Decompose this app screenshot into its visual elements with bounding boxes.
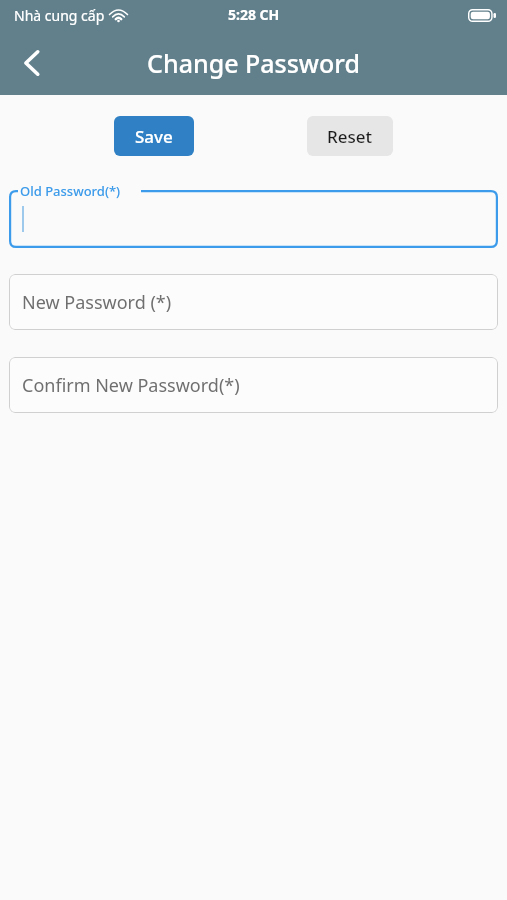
button[interactable]: New Password (*)	[9, 274, 498, 330]
staticText: Old Password(*)	[20, 182, 121, 200]
staticText: Change Password	[147, 46, 360, 80]
button[interactable]: Old Password(*)	[9, 190, 498, 248]
staticText: New Password (*)	[22, 290, 172, 315]
button[interactable]: Reset	[307, 116, 393, 156]
staticText: Reset	[327, 125, 373, 148]
staticText: Confirm New Password(*)	[22, 373, 240, 398]
staticText: 5:28 CH	[228, 5, 280, 24]
button[interactable]: Save	[114, 116, 194, 156]
button[interactable]: Confirm New Password(*)	[9, 357, 498, 413]
staticText: Nhà cung cấp	[14, 6, 105, 25]
staticText: Save	[135, 125, 173, 148]
button[interactable]: Back	[8, 39, 56, 87]
